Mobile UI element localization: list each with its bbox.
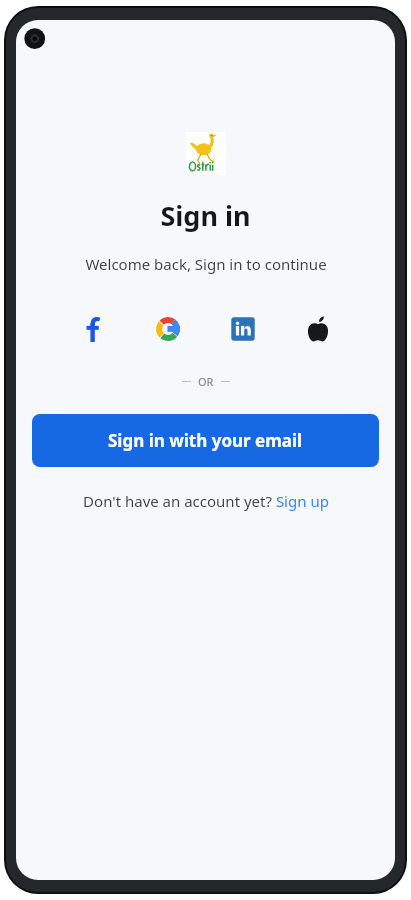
staticText: Welcome back, Sign in to continue [85, 254, 327, 274]
button[interactable]: Sign in with Facebook [72, 308, 114, 350]
button[interactable]: Sign in with your email [32, 414, 379, 467]
staticText: Don't have an account yet? Sign up [83, 491, 329, 511]
button[interactable]: Sign in with Apple [297, 308, 339, 350]
button[interactable]: Sign in with LinkedIn [222, 308, 264, 350]
staticText: Sign in [160, 197, 251, 234]
button[interactable]: Sign in with Google [147, 308, 189, 350]
button[interactable]: Don't have an account yet? Sign up [77, 488, 335, 514]
staticText: OR [198, 374, 214, 389]
staticText: Sign in with your email [108, 429, 303, 452]
